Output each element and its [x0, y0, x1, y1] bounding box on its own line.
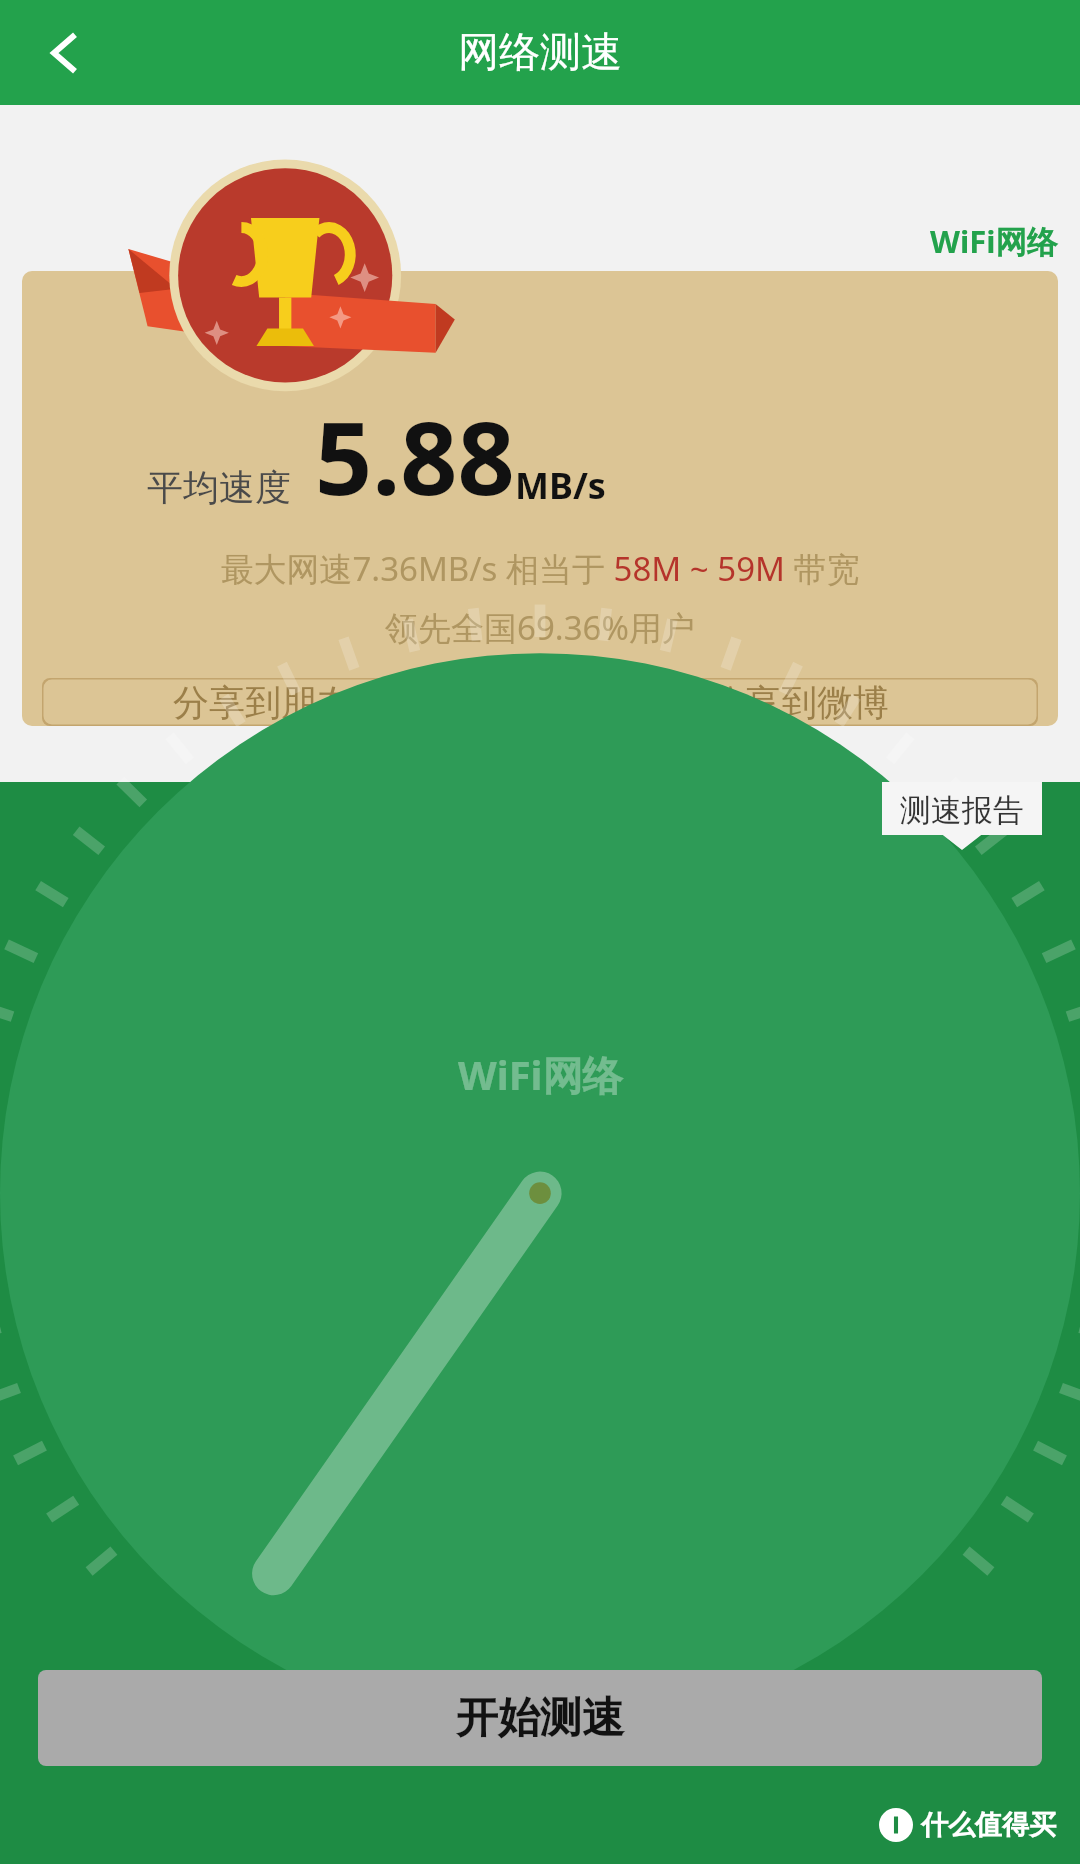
staticText: WiFi网络 — [930, 220, 1058, 262]
staticText: 分享到微博 — [709, 680, 889, 725]
staticText: 分享到朋友圈 — [173, 680, 389, 725]
staticText: 什么值得买 — [921, 1808, 1056, 1842]
button[interactable]: Back — [26, 18, 96, 88]
staticText: 网络测速 — [458, 27, 622, 79]
button[interactable]: 分享到微博 — [560, 678, 1038, 726]
button[interactable]: 开始测速 — [38, 1670, 1042, 1766]
staticText: 平均速度 — [147, 465, 291, 510]
staticText: 5.88 — [315, 388, 515, 524]
staticText: 最大网速7.36MB/s 相当于 58M ~ 59M 带宽 — [22, 546, 1058, 591]
staticText: 测速报告 — [900, 791, 1024, 830]
button[interactable]: 测速报告 — [882, 782, 1042, 850]
staticText: MB/s — [515, 461, 606, 510]
staticText: 领先全国69.36%用户 — [22, 605, 1058, 650]
staticText: WiFi网络 — [458, 1047, 623, 1102]
button[interactable]: 分享到朋友圈 — [42, 678, 520, 726]
staticText: 开始测速 — [456, 1692, 624, 1745]
